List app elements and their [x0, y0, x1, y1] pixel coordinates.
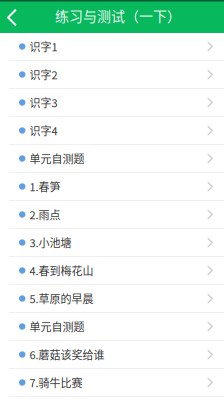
button[interactable]: 识字4	[0, 117, 224, 145]
staticText: 单元自测题	[29, 150, 84, 166]
staticText: 识字4	[29, 122, 57, 138]
button[interactable]: 单元自测题	[0, 145, 224, 173]
button[interactable]: 4.春到梅花山	[0, 257, 224, 285]
button[interactable]: Back	[0, 2, 26, 33]
staticText: 识字3	[29, 94, 57, 110]
button[interactable]: 识字3	[0, 89, 224, 117]
button[interactable]: 6.蘑菇该奖给谁	[0, 341, 224, 369]
button[interactable]: 识字2	[0, 61, 224, 89]
button[interactable]: 5.草原的早晨	[0, 285, 224, 313]
staticText: 7.骑牛比赛	[29, 374, 82, 390]
button[interactable]: 1.春笋	[0, 173, 224, 201]
staticText: 4.春到梅花山	[29, 262, 93, 278]
staticText: 6.蘑菇该奖给谁	[29, 346, 104, 362]
button[interactable]: 单元自测题	[0, 313, 224, 341]
staticText: 2.雨点	[29, 206, 60, 222]
button[interactable]: 7.骑牛比赛	[0, 369, 224, 397]
staticText: 单元自测题	[29, 318, 84, 334]
staticText: 识字2	[29, 66, 57, 82]
button[interactable]: 3.小池塘	[0, 229, 224, 257]
staticText: 识字1	[29, 38, 57, 54]
staticText: 5.草原的早晨	[29, 290, 93, 306]
staticText: 1.春笋	[29, 178, 60, 194]
button[interactable]: 识字1	[0, 33, 224, 61]
staticText: 3.小池塘	[29, 234, 71, 250]
button[interactable]: 2.雨点	[0, 201, 224, 229]
staticText: 练习与测试（一下）	[55, 5, 181, 26]
